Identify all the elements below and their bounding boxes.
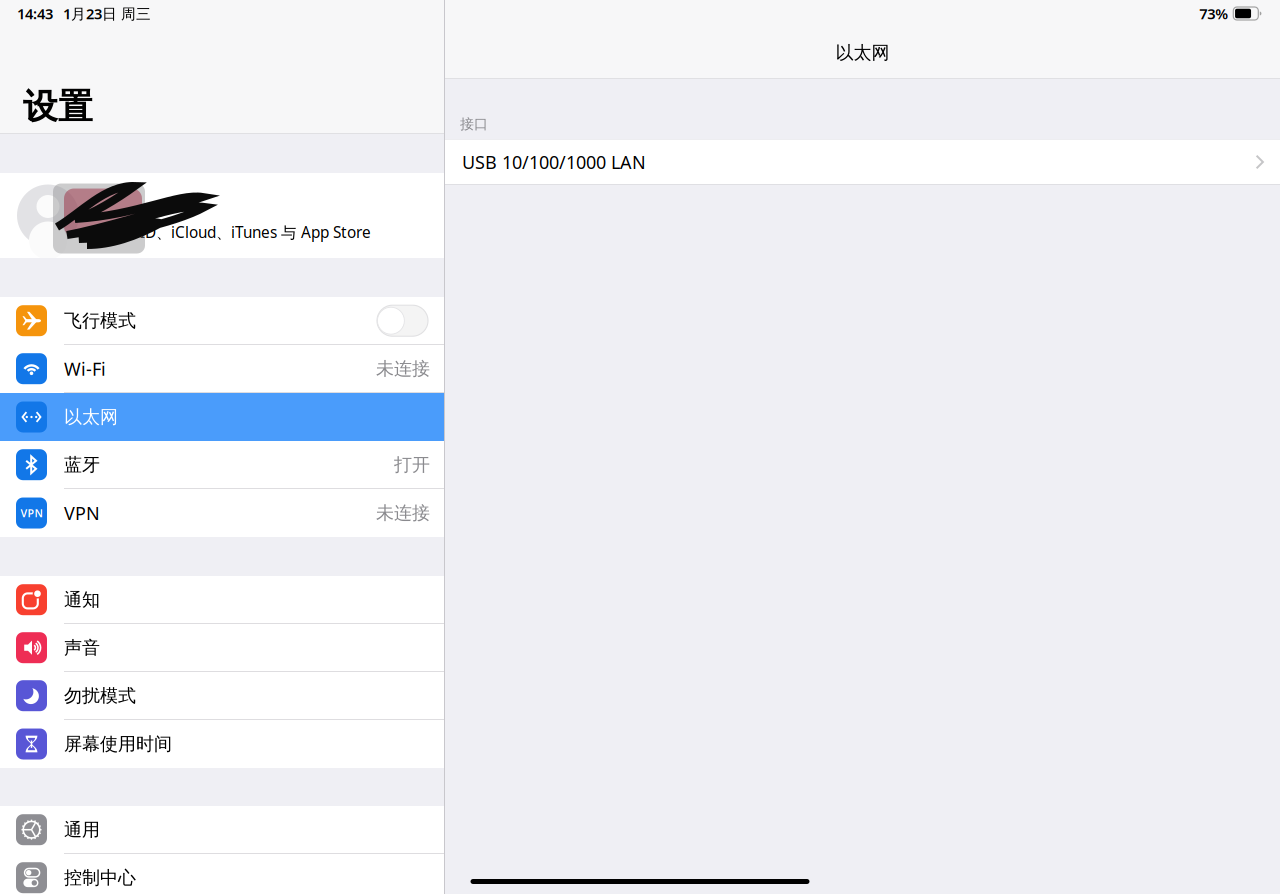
staticText: 屏幕使用时间 [64,733,172,755]
staticText: 14:43 [17,3,53,23]
staticText: 勿扰模式 [64,684,136,707]
button[interactable]: 屏幕使用时间 [0,720,444,768]
staticText: 未连接 [376,357,430,380]
button[interactable]: 声音 [0,624,444,672]
staticText: 打开 [394,453,430,476]
staticText: 通用 [64,818,100,841]
staticText: 接口 [460,115,488,133]
button[interactable]: 蓝牙 [0,441,444,489]
staticText: 飞行模式 [64,309,136,332]
button[interactable]: 以太网 [0,393,444,441]
staticText: VPN [20,506,42,520]
button[interactable]: USB 10/100/1000 LAN [445,139,1280,184]
button[interactable]: Wi-Fi [0,345,444,393]
staticText: 通知 [64,588,100,611]
staticText: 蓝牙 [64,453,100,476]
staticText: Wi-Fi [64,356,106,381]
staticText: 声音 [64,636,100,659]
staticText: 未连接 [376,502,430,524]
button[interactable]: 通知 [0,576,444,624]
staticText: 1月23日 周三 [63,3,151,23]
staticText: 73% [1199,3,1228,23]
staticText: VPN [64,501,100,525]
staticText: 以太网 [835,41,889,64]
staticText: 以太网 [64,406,118,428]
button[interactable]: 控制中心 [0,854,444,894]
staticText: Apple ID、iCloud、iTunes 与 App Store [95,222,371,242]
button[interactable]: Apple ID、iCloud、iTunes 与 App Store [0,173,444,258]
staticText: USB 10/100/1000 LAN [462,150,646,174]
button[interactable]: VPN [0,489,444,537]
staticText: 设置 [23,85,93,128]
button[interactable]: 通用 [0,806,444,854]
button[interactable]: 勿扰模式 [0,672,444,720]
staticText: 控制中心 [64,866,136,889]
button[interactable]: 飞行模式 [0,297,444,345]
